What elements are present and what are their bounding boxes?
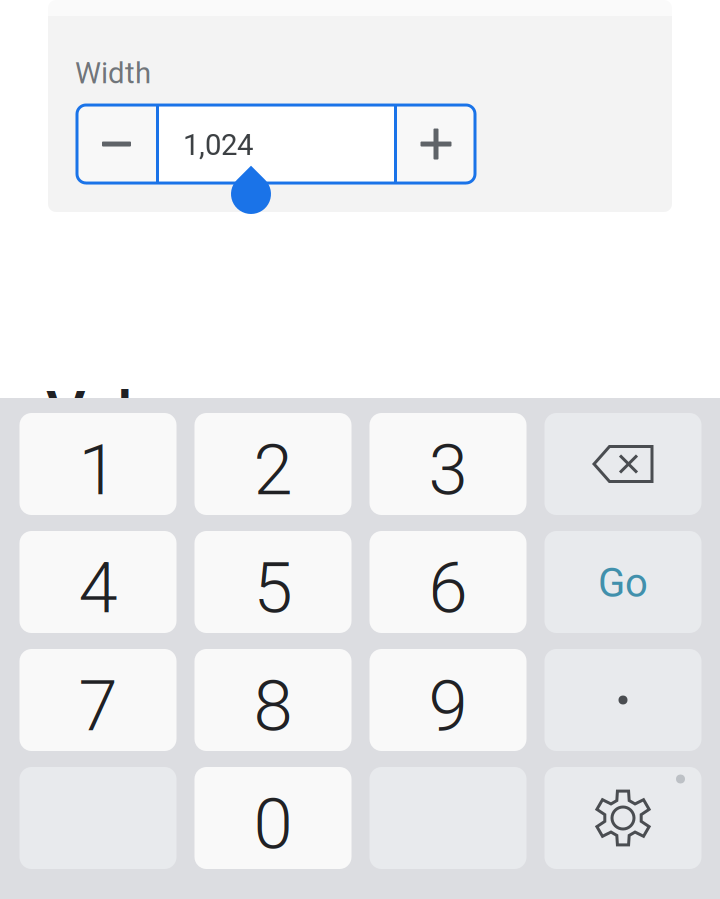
button[interactable]: 0 (194, 767, 351, 869)
button[interactable]: 6 (369, 531, 526, 633)
staticText: 5 (253, 547, 292, 629)
button[interactable]: 4 (19, 531, 176, 633)
staticText: 4 (78, 547, 117, 629)
button[interactable]: Go (544, 531, 701, 633)
staticText: 0 (253, 783, 292, 865)
staticText: 3 (428, 429, 467, 511)
staticText: 1 (78, 429, 117, 511)
staticText: 7 (78, 665, 117, 747)
button[interactable]: Increase width (397, 105, 475, 183)
button[interactable]: Decimal point (544, 649, 701, 751)
button[interactable]: 7 (19, 649, 176, 751)
staticText: 9 (428, 665, 467, 747)
staticText: Value (46, 378, 200, 450)
button[interactable]: 2 (194, 413, 351, 515)
staticText: 2 (253, 429, 292, 511)
button[interactable]: Keyboard settings (544, 767, 701, 869)
button[interactable]: 5 (194, 531, 351, 633)
button[interactable]: Decrease width (77, 105, 156, 183)
staticText: 6 (428, 547, 467, 629)
button[interactable]: 9 (369, 649, 526, 751)
staticText: Go (598, 560, 648, 606)
staticText: 8 (253, 665, 292, 747)
button[interactable]: 3 (369, 413, 526, 515)
button[interactable]: 1 (19, 413, 176, 515)
staticText: 1,024 (183, 128, 253, 162)
button[interactable]: 8 (194, 649, 351, 751)
staticText: Width (75, 56, 151, 90)
button[interactable]: Backspace (544, 413, 701, 515)
